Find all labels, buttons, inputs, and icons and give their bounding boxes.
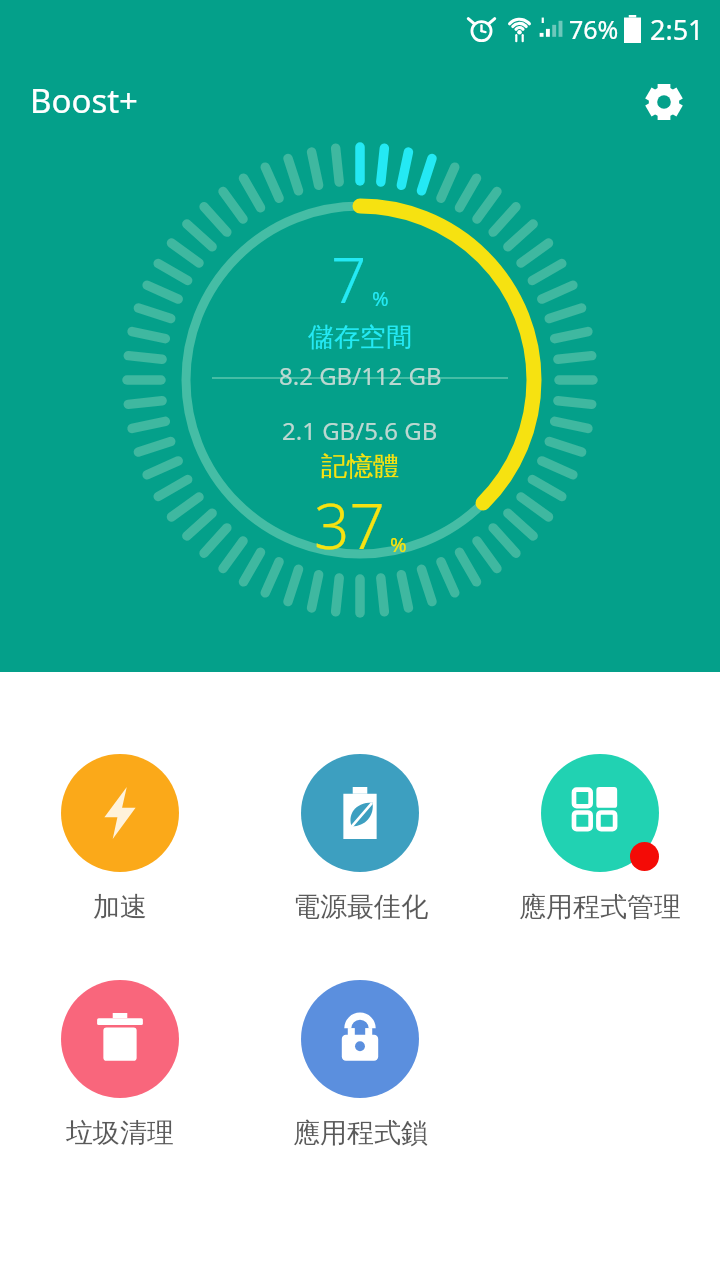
button[interactable]: 應用程式管理 xyxy=(480,750,720,928)
staticText: 7 xyxy=(331,237,367,321)
staticText: 應用程式管理 xyxy=(519,890,681,924)
staticText: 2:51 xyxy=(650,11,704,48)
staticText: 76% xyxy=(569,12,619,46)
button[interactable]: 加速 xyxy=(0,750,240,928)
staticText: 垃圾清理 xyxy=(66,1116,174,1150)
staticText: Boost+ xyxy=(30,78,138,123)
staticText: 儲存空間 xyxy=(308,321,412,354)
button[interactable]: Settings xyxy=(632,70,696,134)
staticText: 2.1 GB/5.6 GB xyxy=(282,414,438,447)
staticText: 電源最佳化 xyxy=(293,890,428,924)
staticText: 8.2 GB/112 GB xyxy=(279,359,442,392)
staticText: % xyxy=(390,531,407,558)
staticText: 37 xyxy=(314,483,385,567)
button[interactable]: 垃圾清理 xyxy=(0,976,240,1154)
staticText: 應用程式鎖 xyxy=(293,1116,428,1150)
staticText: % xyxy=(372,285,389,312)
staticText: 加速 xyxy=(93,890,147,924)
staticText: 記憶體 xyxy=(321,450,399,483)
button[interactable]: 應用程式鎖 xyxy=(240,976,480,1154)
button[interactable]: 電源最佳化 xyxy=(240,750,480,928)
